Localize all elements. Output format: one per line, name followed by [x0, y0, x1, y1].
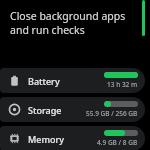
staticText: 4.9 GB / 8 GB [97, 138, 138, 147]
staticText: Close background apps and run checks [10, 9, 126, 37]
staticText: 13 h 32 m [107, 80, 138, 89]
button[interactable]: Battery [0, 68, 145, 93]
button[interactable]: Memory [0, 126, 145, 150]
staticText: Memory [28, 133, 65, 145]
button[interactable]: Storage [0, 97, 145, 122]
staticText: Battery [28, 75, 60, 87]
staticText: 55.9 GB / 256 GB [86, 109, 138, 118]
staticText: Storage [28, 104, 62, 116]
